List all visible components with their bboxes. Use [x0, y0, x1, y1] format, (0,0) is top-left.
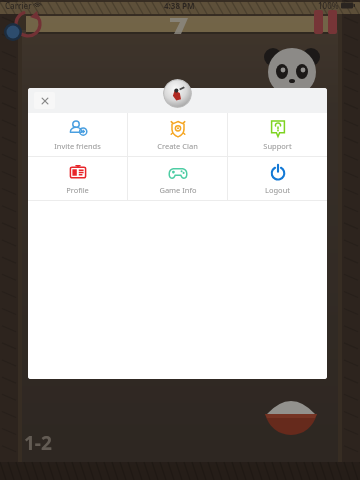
staticText: Carrier — [5, 0, 32, 11]
staticText: 4:38 PM — [164, 0, 195, 11]
button[interactable]: Close — [34, 92, 55, 109]
staticText: Create Clan — [157, 141, 198, 151]
button[interactable]: Game Info — [128, 157, 227, 200]
staticText: Logout — [265, 185, 290, 195]
button[interactable]: Create Clan — [128, 113, 227, 156]
staticText: 100% — [318, 0, 339, 11]
button[interactable]: Logout — [228, 157, 327, 200]
staticText: Profile — [66, 185, 89, 195]
staticText: Game Info — [159, 185, 197, 195]
staticText: Invite friends — [54, 141, 101, 151]
button[interactable]: Invite friends — [28, 113, 127, 156]
button[interactable]: Profile avatar — [163, 79, 192, 108]
button[interactable]: Support — [228, 113, 327, 156]
staticText: Support — [263, 141, 292, 151]
staticText: 1-2 — [24, 430, 52, 456]
button[interactable]: Profile — [28, 157, 127, 200]
